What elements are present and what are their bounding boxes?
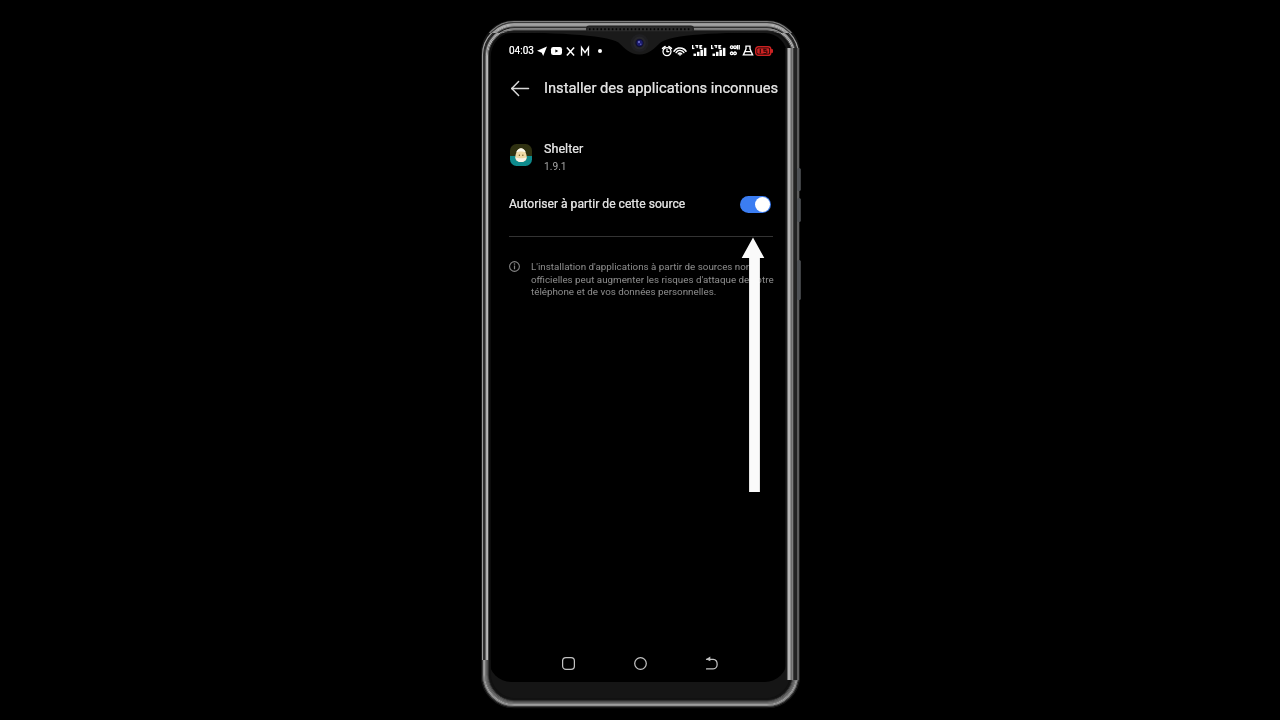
button[interactable]: Back xyxy=(504,72,536,104)
staticText: 1.9.1 xyxy=(544,161,567,173)
staticText: Installer des applications inconnues xyxy=(544,79,779,96)
button[interactable]: Recent apps xyxy=(556,651,580,675)
button[interactable]: Back xyxy=(700,651,724,675)
staticText: 04:03 xyxy=(509,45,534,57)
staticText: Autoriser à partir de cette source xyxy=(509,197,686,211)
staticText: Shelter xyxy=(544,141,584,156)
button[interactable]: Home xyxy=(628,651,652,675)
staticText: L'installation d'applications à partir d… xyxy=(531,261,787,297)
button[interactable]: Shelter xyxy=(489,137,787,177)
button[interactable]: Autoriser à partir de cette source xyxy=(489,186,787,222)
